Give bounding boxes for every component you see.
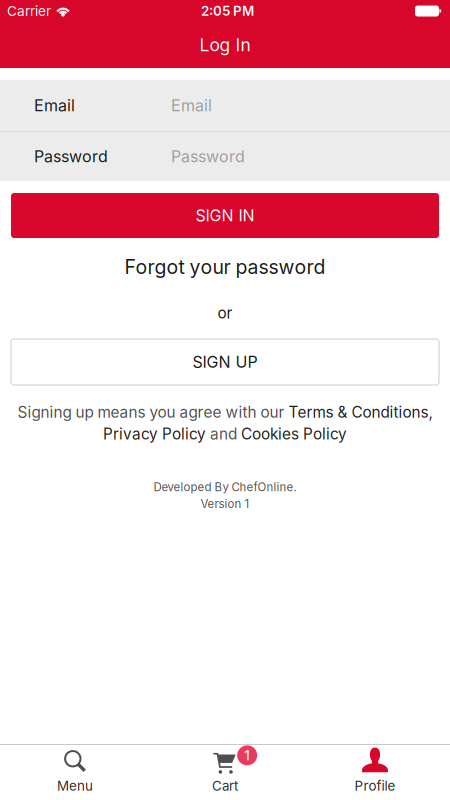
staticText: Developed By ChefOnline. [153,480,296,494]
staticText: Forgot your password [124,255,325,279]
button[interactable]: Privacy Policy [103,425,206,443]
button[interactable]: SIGN IN [11,193,439,238]
staticText: Log In [199,34,250,55]
staticText: 1 [244,747,250,763]
button[interactable]: Menu [0,744,150,800]
staticText: Password [171,147,245,166]
staticText: Privacy Policy [103,425,206,443]
staticText: Password [34,147,108,166]
button[interactable]: Cart, 1 item [150,744,300,800]
button[interactable]: Terms & Conditions, [288,403,432,422]
staticText: and [206,425,241,443]
staticText: Carrier [7,3,51,19]
staticText: Email [171,96,212,115]
staticText: Menu [57,778,93,794]
button[interactable]: Profile [300,744,450,800]
button[interactable]: Forgot your password [0,254,450,280]
button[interactable]: SIGN UP [11,339,439,385]
staticText: Signing up means you agree with our [17,403,288,422]
staticText: Cart [212,778,238,794]
staticText: Email [34,96,75,115]
staticText: Profile [354,778,395,794]
button[interactable]: Cookies Policy [241,425,347,443]
staticText: or [217,304,232,322]
staticText: SIGN IN [195,206,254,225]
staticText: 2:05 PM [201,3,254,19]
staticText: SIGN UP [192,352,257,372]
staticText: Version 1 [200,497,249,511]
staticText: Terms & Conditions, [288,403,432,422]
staticText: Cookies Policy [241,425,347,443]
